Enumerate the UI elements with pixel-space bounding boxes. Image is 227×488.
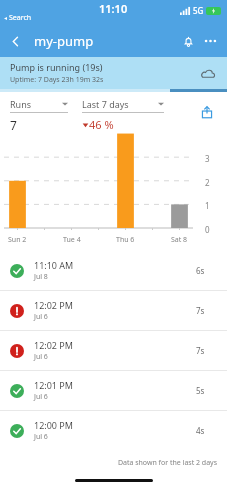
staticText: Tue 4: [63, 235, 81, 245]
button[interactable]: 11:10 AM: [0, 251, 227, 290]
button[interactable]: Last 7 days: [82, 98, 164, 132]
staticText: Uptime: 7 Days 23h 19m 32s: [10, 75, 104, 85]
button[interactable]: Back: [4, 30, 26, 52]
staticText: Jul 8: [34, 272, 48, 282]
button[interactable]: Runs: [10, 98, 68, 133]
button[interactable]: 12:01 PM: [0, 371, 227, 410]
staticText: Jul 6: [34, 352, 48, 362]
staticText: Sun 2: [8, 235, 27, 245]
staticText: my-pump: [34, 32, 94, 50]
staticText: Thu 6: [116, 235, 135, 245]
button[interactable]: Share: [197, 102, 217, 122]
staticText: 7: [10, 117, 17, 133]
staticText: 12:02 PM: [34, 339, 73, 351]
staticText: Pump is running (19s): [10, 61, 103, 73]
staticText: Data shown for the last 2 days: [0, 458, 217, 468]
staticText: 12:02 PM: [34, 299, 73, 311]
button[interactable]: 12:02 PM: [0, 291, 227, 330]
button[interactable]: Cloud status: [199, 64, 217, 82]
staticText: 11:10: [99, 1, 128, 16]
staticText: 46 %: [89, 117, 114, 132]
staticText: Search: [9, 13, 32, 23]
staticText: Jul 6: [34, 432, 48, 442]
staticText: 3: [205, 153, 210, 164]
staticText: Runs: [10, 98, 32, 110]
staticText: 12:01 PM: [34, 379, 73, 391]
staticText: Last 7 days: [82, 98, 129, 110]
staticText: Jul 6: [34, 312, 48, 322]
button[interactable]: More options: [199, 30, 221, 52]
staticText: 5s: [196, 385, 205, 396]
staticText: 4s: [196, 425, 205, 436]
staticText: 7s: [196, 305, 205, 316]
staticText: Sat 8: [171, 235, 188, 245]
staticText: Jul 6: [34, 392, 48, 402]
staticText: 7s: [196, 345, 205, 356]
staticText: 5G: [193, 5, 204, 16]
staticText: 6s: [196, 265, 205, 276]
button[interactable]: Notifications: [177, 30, 199, 52]
button[interactable]: 12:00 PM: [0, 411, 227, 450]
staticText: 12:00 PM: [34, 419, 73, 431]
button[interactable]: 12:02 PM: [0, 331, 227, 370]
staticText: 2: [205, 177, 210, 188]
staticText: 1: [205, 200, 210, 211]
staticText: 11:10 AM: [34, 259, 74, 271]
staticText: 0: [205, 224, 210, 235]
